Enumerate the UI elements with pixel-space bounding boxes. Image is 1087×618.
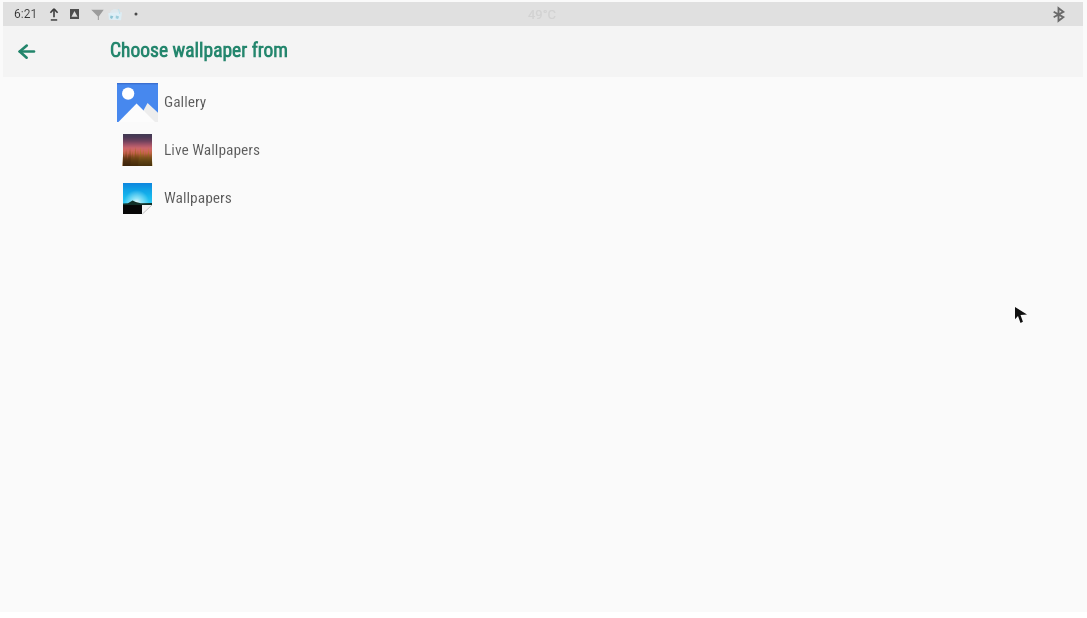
- staticText: Wallpapers: [164, 189, 232, 207]
- button[interactable]: Gallery: [0, 78, 1087, 126]
- staticText: 6:21: [14, 7, 38, 21]
- button[interactable]: Wallpapers: [0, 174, 1087, 222]
- staticText: Gallery: [164, 93, 207, 111]
- button[interactable]: Back: [7, 33, 45, 71]
- staticText: 49°C: [528, 7, 556, 22]
- staticText: Live Wallpapers: [164, 141, 261, 159]
- staticText: Choose wallpaper from: [110, 39, 289, 62]
- button[interactable]: Live Wallpapers: [0, 126, 1087, 174]
